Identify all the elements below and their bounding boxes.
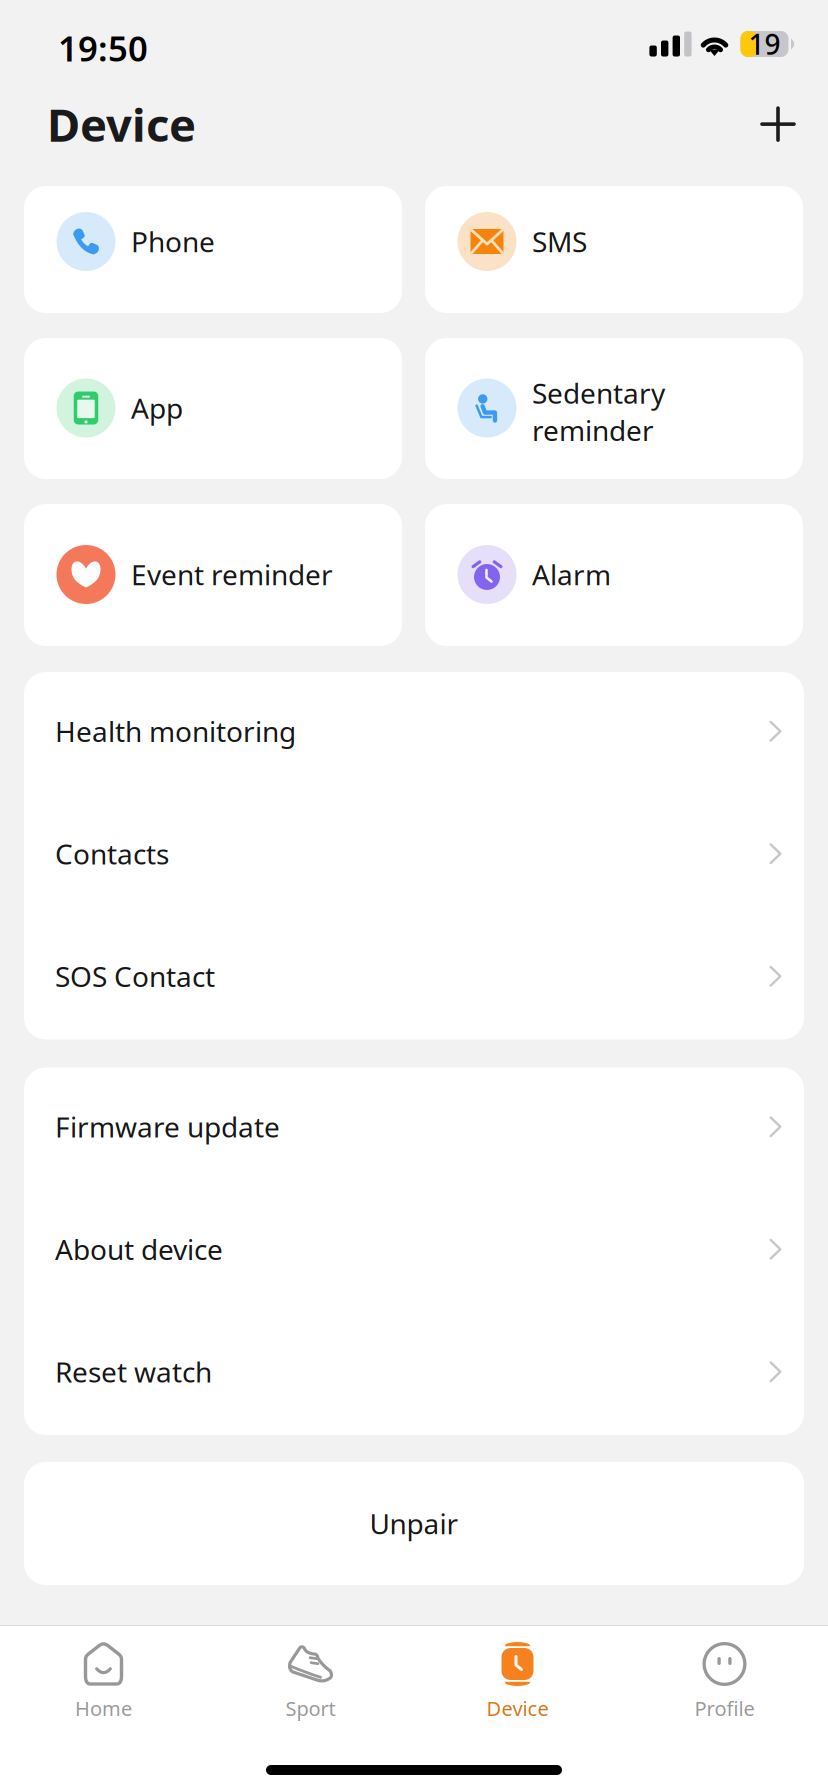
staticText: Device xyxy=(47,94,196,154)
button[interactable]: Firmware update xyxy=(24,1067,804,1190)
staticText: App xyxy=(131,389,183,427)
staticText: Health monitoring xyxy=(55,713,296,750)
button[interactable]: Alarm xyxy=(425,504,803,646)
staticText: Contacts xyxy=(55,835,169,872)
button[interactable]: Reset watch xyxy=(24,1312,804,1435)
button[interactable]: App xyxy=(24,338,402,479)
button[interactable]: Add device xyxy=(749,95,807,153)
button[interactable]: SOS Contact xyxy=(24,917,804,1039)
button[interactable]: Home xyxy=(0,1626,207,1748)
staticText: SMS xyxy=(532,223,587,260)
button[interactable]: About device xyxy=(24,1190,804,1312)
button[interactable]: Health monitoring xyxy=(24,672,804,794)
button[interactable]: Device xyxy=(414,1626,621,1748)
staticText: SOS Contact xyxy=(55,958,215,995)
staticText: 19 xyxy=(748,25,780,63)
staticText: Alarm xyxy=(532,556,611,593)
button[interactable]: Unpair xyxy=(24,1462,804,1585)
button[interactable]: Event reminder xyxy=(24,504,402,646)
staticText: Sport xyxy=(285,1695,335,1722)
staticText: About device xyxy=(55,1231,223,1268)
staticText: Reset watch xyxy=(55,1353,212,1390)
button[interactable]: SMS xyxy=(425,186,803,313)
staticText: 19:50 xyxy=(58,25,148,71)
staticText: Phone xyxy=(131,223,215,260)
button[interactable]: Profile xyxy=(621,1626,828,1748)
staticText: Profile xyxy=(694,1695,754,1722)
button[interactable]: Phone xyxy=(24,186,402,313)
staticText: Home xyxy=(75,1695,132,1722)
staticText: Sedentary reminder xyxy=(532,374,665,449)
button[interactable]: Sport xyxy=(207,1626,414,1748)
staticText: Firmware update xyxy=(55,1108,280,1145)
staticText: Event reminder xyxy=(131,556,333,593)
staticText: Unpair xyxy=(369,1505,458,1542)
staticText: Device xyxy=(486,1695,548,1722)
button[interactable]: Sedentary reminder xyxy=(425,338,803,479)
button[interactable]: Contacts xyxy=(24,794,804,917)
